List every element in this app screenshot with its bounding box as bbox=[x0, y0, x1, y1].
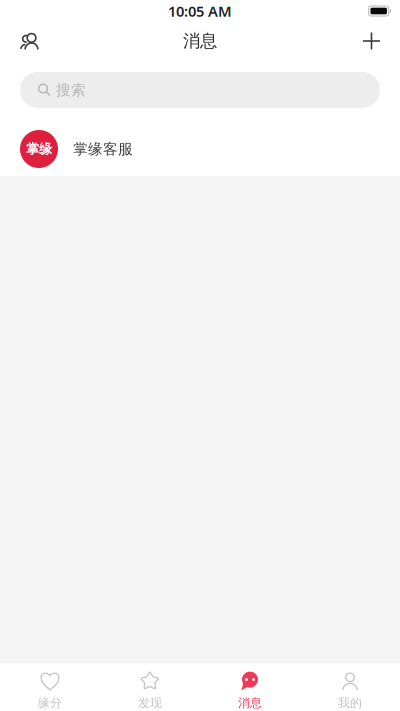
button[interactable]: 缘分 bbox=[0, 661, 100, 711]
staticText: 搜索 bbox=[56, 81, 86, 99]
staticText: 发现 bbox=[138, 696, 162, 710]
button[interactable]: New message bbox=[352, 22, 391, 59]
staticText: 10:05 AM bbox=[168, 1, 232, 21]
button[interactable]: 消息 bbox=[200, 661, 300, 711]
staticText: 掌缘 bbox=[26, 141, 52, 157]
button[interactable]: 我的 bbox=[300, 661, 400, 711]
button[interactable]: 搜索 bbox=[20, 72, 380, 108]
button[interactable]: Contacts bbox=[9, 23, 50, 59]
button[interactable]: 掌缘 bbox=[0, 108, 400, 176]
button[interactable]: 发现 bbox=[100, 661, 200, 711]
staticText: 消息 bbox=[183, 30, 217, 52]
staticText: 消息 bbox=[238, 696, 262, 710]
staticText: 缘分 bbox=[38, 696, 62, 710]
staticText: 我的 bbox=[338, 696, 362, 710]
staticText: 掌缘客服 bbox=[73, 140, 133, 158]
